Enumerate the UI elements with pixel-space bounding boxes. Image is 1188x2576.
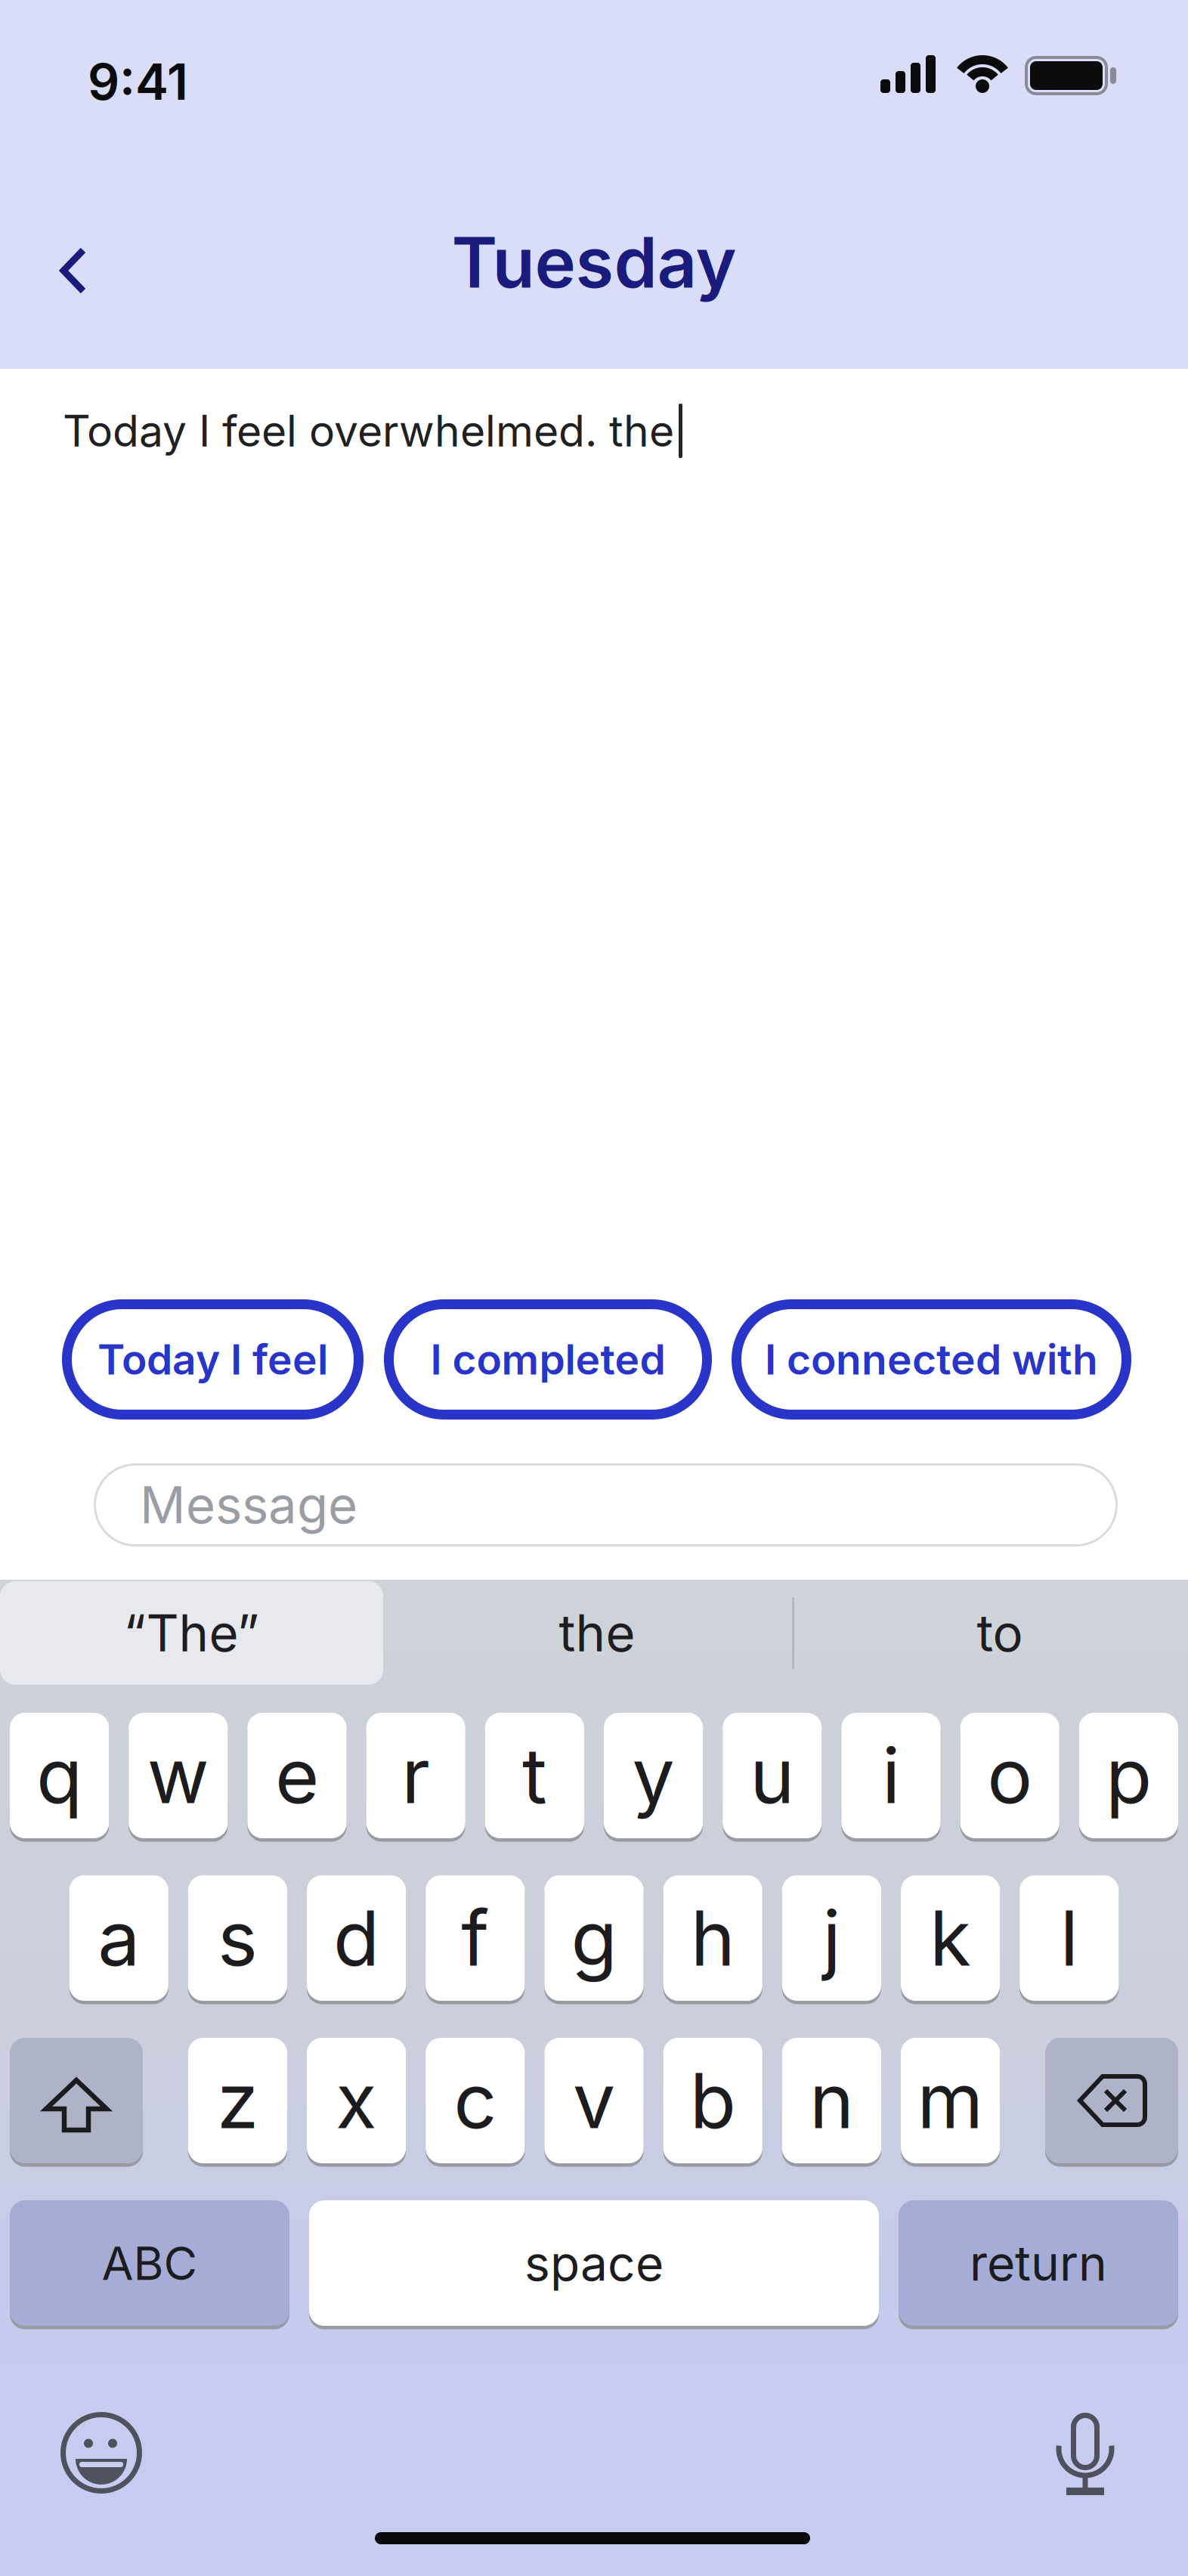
button[interactable]: i xyxy=(841,1713,941,1838)
staticText: a xyxy=(98,1892,140,1984)
staticText: I completed xyxy=(430,1334,665,1385)
staticText: s xyxy=(218,1892,258,1984)
button[interactable]: l xyxy=(1020,1875,1119,2001)
staticText: 9:41 xyxy=(88,51,188,112)
button[interactable]: b xyxy=(663,2038,762,2163)
button[interactable]: j xyxy=(782,1875,881,2001)
button[interactable]: “The” xyxy=(0,1581,383,1685)
button[interactable]: n xyxy=(782,2038,881,2163)
staticText: z xyxy=(217,2055,258,2146)
button[interactable]: h xyxy=(663,1875,762,2001)
button[interactable]: f xyxy=(426,1875,525,2001)
button[interactable]: q xyxy=(10,1713,109,1838)
button[interactable]: x xyxy=(307,2038,406,2163)
button[interactable] xyxy=(54,243,92,299)
staticText: Tuesday xyxy=(452,220,736,304)
button[interactable]: return xyxy=(899,2200,1178,2326)
staticText: Today I feel xyxy=(97,1334,328,1385)
staticText: return xyxy=(970,2234,1107,2292)
staticText: p xyxy=(1106,1730,1152,1821)
button[interactable]: space xyxy=(309,2200,879,2326)
button[interactable]: Message xyxy=(94,1463,1118,1547)
staticText: q xyxy=(36,1730,82,1821)
button[interactable]: I connected with xyxy=(732,1299,1131,1420)
staticText: h xyxy=(691,1892,735,1984)
staticText: Today I feel overwhelmed. the xyxy=(63,405,674,457)
button[interactable]: t xyxy=(485,1713,584,1838)
staticText: n xyxy=(809,2055,854,2146)
button[interactable] xyxy=(10,2038,143,2163)
button[interactable] xyxy=(1047,2413,1123,2496)
button[interactable]: ABC xyxy=(10,2200,289,2326)
button[interactable]: k xyxy=(901,1875,1000,2001)
staticText: j xyxy=(823,1892,841,1984)
button[interactable]: m xyxy=(901,2038,1000,2163)
staticText: the xyxy=(559,1602,635,1664)
staticText: ABC xyxy=(102,2235,198,2291)
button[interactable]: v xyxy=(544,2038,644,2163)
staticText: “The” xyxy=(124,1602,260,1664)
staticText: b xyxy=(690,2055,736,2146)
staticText: v xyxy=(573,2055,615,2146)
staticText: u xyxy=(750,1730,794,1821)
staticText: I connected with xyxy=(765,1334,1098,1385)
button[interactable]: e xyxy=(247,1713,347,1838)
staticText: y xyxy=(632,1730,675,1821)
button[interactable]: g xyxy=(544,1875,644,2001)
staticText: d xyxy=(333,1892,379,1984)
button[interactable]: a xyxy=(69,1875,168,2001)
staticText: m xyxy=(917,2055,984,2146)
staticText: x xyxy=(336,2055,377,2146)
button[interactable] xyxy=(60,2412,142,2494)
button[interactable]: Today I feel xyxy=(62,1299,364,1420)
button[interactable]: p xyxy=(1079,1713,1178,1838)
button[interactable] xyxy=(1045,2038,1178,2163)
staticText: c xyxy=(454,2055,497,2146)
button[interactable]: y xyxy=(604,1713,703,1838)
button[interactable]: d xyxy=(307,1875,406,2001)
staticText: Message xyxy=(140,1474,357,1536)
button[interactable]: the xyxy=(446,1581,748,1685)
staticText: f xyxy=(461,1892,489,1984)
staticText: k xyxy=(930,1892,971,1984)
staticText: e xyxy=(275,1730,319,1821)
staticText: t xyxy=(522,1730,547,1821)
button[interactable]: r xyxy=(366,1713,465,1838)
staticText: g xyxy=(571,1892,617,1984)
button[interactable]: z xyxy=(188,2038,287,2163)
button[interactable]: c xyxy=(426,2038,525,2163)
staticText: w xyxy=(147,1730,209,1821)
button[interactable]: u xyxy=(723,1713,822,1838)
staticText: space xyxy=(524,2234,664,2292)
staticText: r xyxy=(401,1730,430,1821)
staticText: l xyxy=(1060,1892,1078,1984)
button[interactable]: to xyxy=(849,1581,1151,1685)
staticText: to xyxy=(977,1602,1023,1664)
button[interactable]: o xyxy=(960,1713,1059,1838)
button[interactable]: I completed xyxy=(384,1299,712,1420)
staticText: i xyxy=(882,1730,900,1821)
button[interactable]: s xyxy=(188,1875,287,2001)
button[interactable]: w xyxy=(129,1713,228,1838)
staticText: o xyxy=(987,1730,1032,1821)
